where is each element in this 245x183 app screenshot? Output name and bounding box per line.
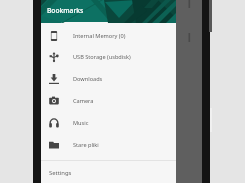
other: Camera (49, 96, 59, 106)
button[interactable]: Internal Memory (0) (41, 25, 176, 47)
button[interactable]: Music (41, 112, 176, 134)
staticText: Internal Memory (0) (73, 32, 126, 40)
staticText: Stare pliki (73, 141, 99, 149)
button[interactable]: Camera (41, 90, 176, 112)
other: Internal Memory (0) (49, 31, 59, 41)
other: Music (49, 118, 59, 128)
staticText: USB Storage (usbdisk) (73, 53, 131, 61)
staticText: Camera (73, 97, 94, 105)
button[interactable]: USB Storage (usbdisk) (41, 46, 176, 68)
button[interactable]: Settings (41, 164, 176, 183)
button[interactable]: Downloads (41, 68, 176, 90)
other: Stare pliki (49, 140, 59, 150)
other: Downloads (49, 74, 59, 84)
staticText: Music (73, 119, 89, 127)
button[interactable]: Stare pliki (41, 134, 176, 156)
other: USB Storage (usbdisk) (49, 52, 59, 62)
staticText: Bookmarks (47, 6, 84, 15)
staticText: Downloads (73, 75, 103, 83)
staticText: Settings (49, 169, 72, 177)
